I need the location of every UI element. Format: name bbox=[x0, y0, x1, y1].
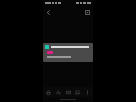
button[interactable]: Back bbox=[44, 8, 53, 17]
button[interactable]: Home bbox=[44, 87, 53, 97]
button[interactable]: Wallet bbox=[64, 87, 73, 97]
button[interactable]: Label bbox=[47, 51, 53, 54]
button[interactable]: Menu bbox=[83, 87, 92, 97]
button[interactable]: Notifications bbox=[73, 87, 82, 97]
button[interactable]: Label bbox=[43, 43, 93, 62]
button[interactable]: Activity bbox=[54, 87, 63, 97]
button[interactable]: More options bbox=[83, 8, 92, 17]
